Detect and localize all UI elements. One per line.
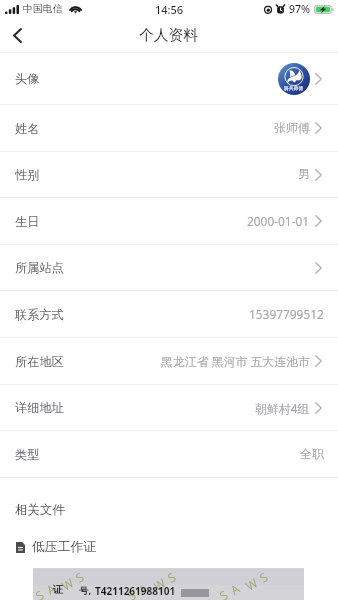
staticText: 类型 (15, 447, 40, 462)
staticText: 号, (79, 584, 92, 597)
button[interactable]: 姓名 (0, 105, 338, 152)
button[interactable]: 头像 (0, 53, 338, 105)
staticText: S (216, 586, 231, 600)
staticText: S (124, 586, 139, 600)
staticText: 男 (298, 167, 310, 182)
button[interactable]: 所属站点 (0, 245, 338, 291)
button[interactable]: 所在地区 (0, 338, 338, 385)
staticText: 相关文件 (15, 502, 65, 518)
staticText: 2000-01-01 (247, 213, 310, 229)
staticText: 所在地区 (15, 354, 64, 369)
button[interactable]: 性别 (0, 152, 338, 198)
staticText: 全职 (300, 447, 324, 462)
staticText: A (227, 580, 243, 598)
staticText: 头像 (15, 71, 40, 86)
staticText: 97% (289, 2, 310, 16)
staticText: S (72, 568, 87, 586)
staticText: 低压工作证 (32, 539, 96, 555)
button[interactable]: 详细地址 (0, 385, 338, 431)
staticText: 中国电信 (23, 3, 63, 15)
staticText: 生日 (15, 214, 40, 229)
staticText: 姓名 (15, 121, 40, 136)
staticText: 个人资料 (139, 26, 199, 45)
staticText: 所属站点 (15, 260, 64, 275)
staticText: T4211261988101 (95, 584, 176, 598)
staticText: S (32, 586, 47, 600)
staticText: 黑龙江省 黑河市 五大连池市 (161, 353, 310, 369)
staticText: W (59, 574, 76, 594)
staticText: A (43, 580, 59, 598)
button[interactable]: Back (9, 24, 25, 46)
button[interactable]: 类型 (0, 431, 338, 478)
staticText: 15397799512 (249, 306, 324, 322)
staticText: A (135, 580, 151, 598)
staticText: 性别 (15, 167, 40, 182)
button[interactable]: 生日 (0, 198, 338, 245)
staticText: 联系方式 (15, 307, 64, 322)
staticText: 证 (53, 583, 63, 596)
staticText: S (256, 568, 271, 586)
staticText: 骑兵师傅 (284, 85, 304, 91)
button[interactable]: 联系方式 (0, 291, 338, 338)
staticText: 14:56 (155, 2, 184, 17)
staticText: 张师傅 (274, 121, 310, 136)
staticText: W (243, 574, 260, 594)
staticText: 朝鲜村4组 (255, 400, 310, 416)
staticText: 详细地址 (15, 400, 64, 415)
button[interactable]: 低压工作证 (16, 539, 338, 555)
staticText: S (164, 568, 179, 586)
staticText: W (151, 574, 168, 594)
